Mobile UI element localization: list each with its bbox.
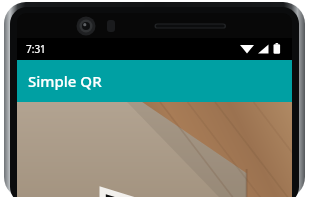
staticText: 7:31 [26, 42, 46, 56]
button[interactable]: Camera viewfinder [17, 102, 292, 197]
staticText: Simple QR [28, 71, 102, 91]
button[interactable]: Simple QR [17, 60, 292, 102]
